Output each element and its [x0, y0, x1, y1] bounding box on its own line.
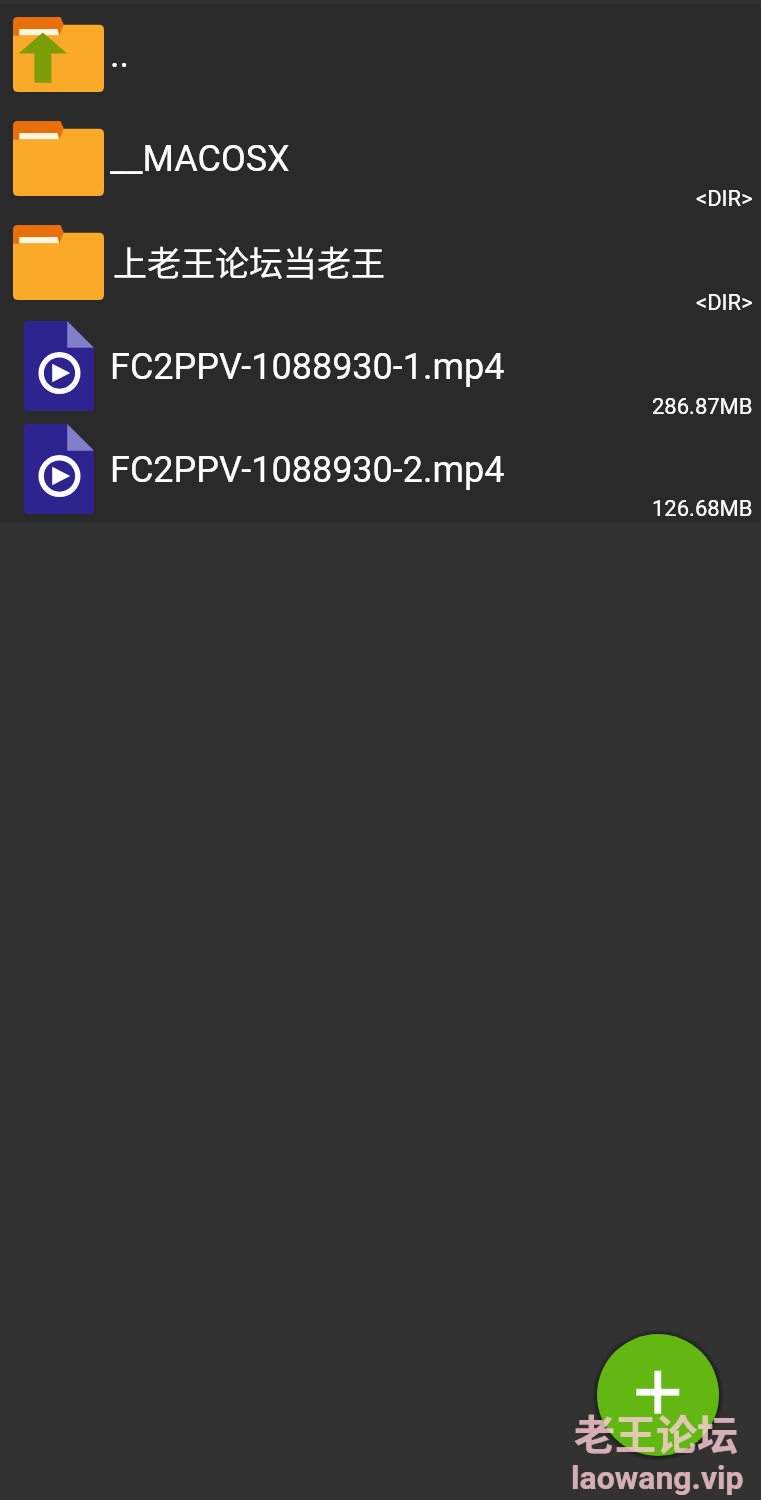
button[interactable]: 上老王论坛当老王: [0, 212, 761, 316]
staticText: __MACOSX: [110, 138, 290, 180]
button[interactable]: Add: [597, 1334, 719, 1456]
staticText: 126.68MB: [652, 496, 753, 522]
button[interactable]: FC2PPV-1088930-2.mp4: [0, 420, 761, 522]
staticText: ..: [110, 34, 129, 76]
staticText: 上老王论坛当老王: [113, 237, 385, 286]
staticText: 286.87MB: [652, 394, 753, 420]
button[interactable]: ..: [0, 4, 761, 108]
button[interactable]: FC2PPV-1088930-1.mp4: [0, 316, 761, 420]
staticText: FC2PPV-1088930-1.mp4: [110, 346, 505, 388]
button[interactable]: __MACOSX: [0, 108, 761, 212]
staticText: FC2PPV-1088930-2.mp4: [110, 449, 505, 491]
staticText: <DIR>: [696, 290, 753, 316]
staticText: <DIR>: [696, 186, 753, 212]
staticText: 老王论坛: [574, 1402, 738, 1461]
staticText: laowang.vip: [571, 1459, 744, 1497]
